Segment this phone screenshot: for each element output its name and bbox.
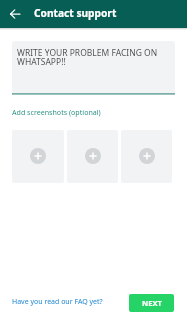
button[interactable]: Add screenshot bbox=[121, 130, 172, 183]
staticText: Have you read our FAQ yet? bbox=[12, 297, 103, 307]
button[interactable]: NEXT bbox=[129, 294, 174, 312]
button[interactable]: Back bbox=[3, 2, 27, 26]
staticText: Contact support bbox=[34, 6, 117, 20]
button[interactable]: Add screenshot bbox=[67, 130, 118, 183]
staticText: Add screenshots (optional) bbox=[12, 107, 101, 117]
button[interactable]: Add screenshot bbox=[12, 130, 64, 183]
button[interactable]: WRITE YOUR PROBLEM FACING ON WHATSAPP!! bbox=[12, 41, 175, 93]
staticText: WRITE YOUR PROBLEM FACING ON WHATSAPP!! bbox=[17, 47, 170, 68]
button[interactable]: Have you read our FAQ yet? bbox=[6, 293, 109, 311]
staticText: NEXT bbox=[142, 298, 162, 308]
